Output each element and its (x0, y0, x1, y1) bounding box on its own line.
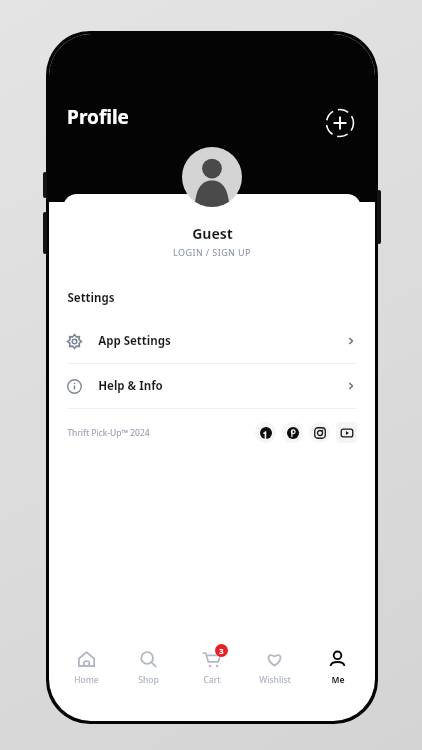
staticText: Guest (192, 224, 233, 243)
staticText: Settings (67, 290, 115, 306)
button[interactable]: Shop (117, 637, 180, 699)
staticText: Me (331, 674, 345, 686)
staticText: Home (74, 674, 99, 686)
staticText: Shop (138, 674, 159, 686)
staticText: Help & Info (98, 378, 163, 394)
staticText: Thrift Pick-Up™ 2024 (67, 427, 150, 439)
staticText: App Settings (98, 333, 171, 349)
staticText: LOGIN / SIGN UP (173, 246, 251, 258)
button[interactable]: 3 (180, 637, 243, 699)
button[interactable]: Guest (63, 194, 361, 278)
staticText: 3 (219, 646, 224, 656)
button[interactable]: Add (323, 106, 357, 140)
button[interactable]: YouTube (336, 422, 357, 443)
button[interactable]: Instagram (309, 422, 330, 443)
button[interactable]: Help & Info (67, 364, 357, 408)
button[interactable]: App Settings (67, 319, 357, 363)
button[interactable]: Profile photo (182, 147, 242, 207)
button[interactable]: Pinterest (282, 422, 303, 443)
button[interactable]: Home (55, 637, 117, 699)
button[interactable]: Wishlist (243, 637, 306, 699)
staticText: Profile (67, 104, 129, 130)
staticText: Cart (203, 674, 221, 686)
button[interactable]: Me (306, 637, 369, 699)
button[interactable]: Facebook (255, 422, 276, 443)
staticText: Wishlist (259, 674, 291, 686)
